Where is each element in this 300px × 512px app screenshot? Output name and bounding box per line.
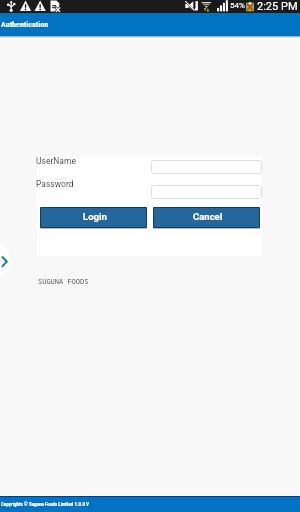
staticText: Login	[83, 211, 107, 222]
staticText: 54%	[230, 1, 245, 10]
staticText: SUGUNA FOODS	[38, 277, 89, 287]
staticText: Authentication	[1, 20, 49, 29]
staticText: Cancel	[193, 211, 223, 222]
button[interactable]	[151, 185, 262, 199]
button[interactable]: Cancel	[154, 208, 259, 227]
staticText: 2:25 PM	[257, 0, 298, 13]
staticText: Password	[36, 179, 74, 189]
button[interactable]: Login	[41, 208, 146, 227]
staticText: UserName	[36, 156, 76, 166]
button[interactable]	[151, 160, 262, 174]
button[interactable]: Open navigation drawer	[0, 242, 11, 279]
staticText: Copyrights © Suguna Foods Limited 1.0.0 …	[1, 501, 89, 507]
